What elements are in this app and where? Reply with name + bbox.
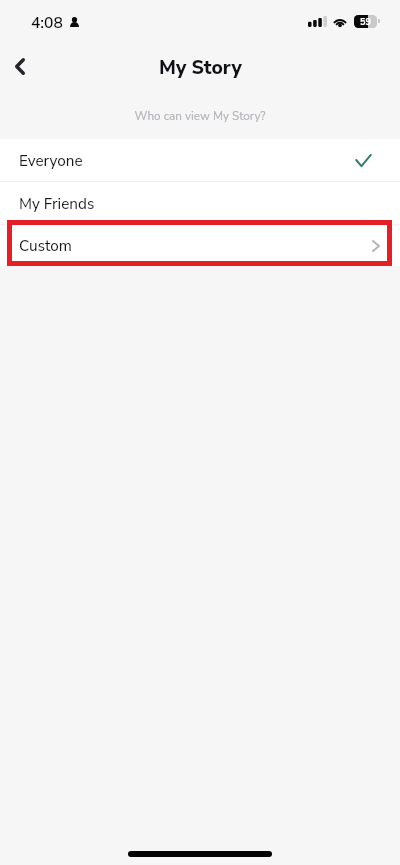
- staticText: Everyone: [19, 151, 83, 172]
- staticText: My Story: [159, 54, 242, 80]
- staticText: 4:08: [31, 12, 63, 33]
- staticText: My Friends: [19, 194, 95, 215]
- button[interactable]: Everyone: [0, 139, 400, 181]
- button[interactable]: Back: [2, 48, 38, 84]
- button[interactable]: My Friends: [0, 182, 400, 224]
- staticText: Who can view My Story?: [0, 108, 400, 124]
- button[interactable]: Custom: [0, 225, 400, 266]
- staticText: 59: [354, 16, 377, 29]
- staticText: Custom: [19, 236, 72, 257]
